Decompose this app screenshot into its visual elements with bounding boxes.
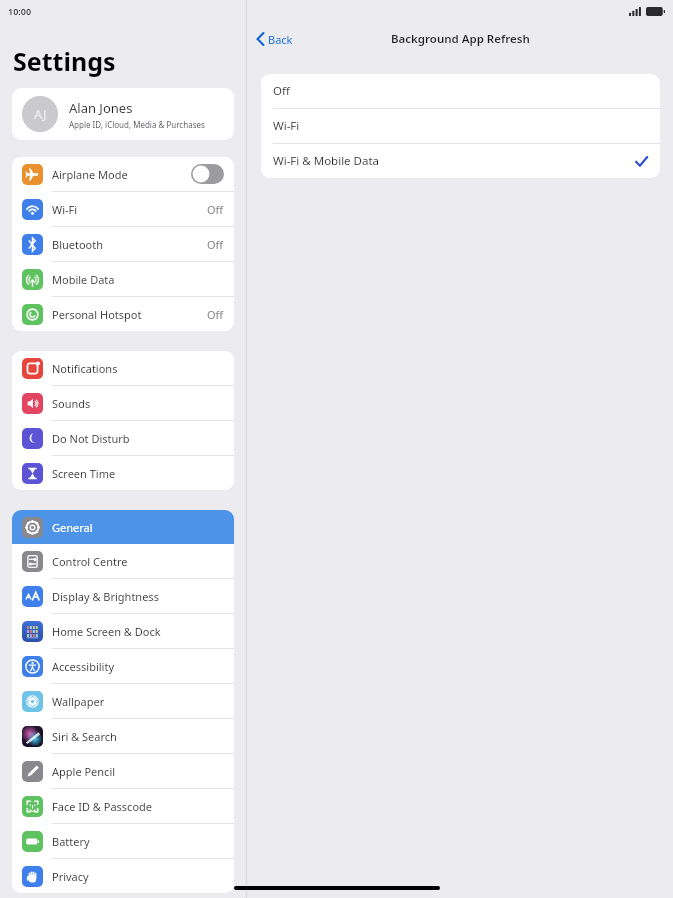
staticText: Control Centre [52,554,128,569]
button[interactable]: Wi-Fi & Mobile Data [261,144,660,178]
button[interactable]: Face ID & Passcode [12,789,234,823]
staticText: Background App Refresh [391,31,530,47]
staticText: 10:00 [8,5,32,17]
staticText: Apple ID, iCloud, Media & Purchases [69,119,205,130]
button[interactable]: Apple Pencil [12,754,234,788]
staticText: Airplane Mode [52,167,128,182]
staticText: Face ID & Passcode [52,799,153,814]
staticText: Off [207,307,224,322]
staticText: Alan Jones [69,99,133,117]
button[interactable]: Wi-Fi [12,192,234,226]
staticText: Off [207,202,224,217]
button[interactable]: Off [261,74,660,108]
button[interactable]: Display & Brightness [12,579,234,613]
staticText: Off [273,83,290,99]
staticText: Apple Pencil [52,764,116,779]
staticText: Off [207,237,224,252]
staticText: Personal Hotspot [52,307,142,322]
staticText: Sounds [52,396,91,411]
staticText: Mobile Data [52,272,115,287]
button[interactable]: Do Not Disturb [12,421,234,455]
staticText: Notifications [52,361,118,376]
button[interactable]: Back [247,25,301,53]
button[interactable]: Bluetooth [12,227,234,261]
staticText: Screen Time [52,466,116,481]
staticText: Settings [13,44,116,78]
button[interactable]: Siri & Search [12,719,234,753]
staticText: Accessibility [52,659,115,674]
staticText: Wi-Fi [52,202,78,217]
button[interactable]: Privacy [12,859,234,893]
staticText: Home Screen & Dock [52,624,161,639]
button[interactable]: AJ [12,88,234,140]
button[interactable]: Mobile Data [12,262,234,296]
staticText: Siri & Search [52,729,117,744]
staticText: Wallpaper [52,694,105,709]
button[interactable]: Sounds [12,386,234,420]
button[interactable]: Airplane Mode [12,157,234,191]
button[interactable]: General [12,510,234,544]
button[interactable]: Accessibility [12,649,234,683]
button[interactable]: Personal Hotspot [12,297,234,331]
staticText: Bluetooth [52,237,104,252]
staticText: Wi-Fi [273,118,300,134]
button[interactable]: Notifications [12,351,234,385]
button[interactable]: Battery [12,824,234,858]
staticText: Battery [52,834,90,849]
button[interactable]: Screen Time [12,456,234,490]
staticText: AJ [34,105,47,123]
staticText: Do Not Disturb [52,431,130,446]
button[interactable]: Control Centre [12,544,234,578]
staticText: Display & Brightness [52,589,159,604]
staticText: Privacy [52,869,89,884]
button[interactable]: Home Screen & Dock [12,614,234,648]
staticText: Back [268,32,293,47]
button[interactable]: Wallpaper [12,684,234,718]
staticText: Wi-Fi & Mobile Data [273,153,380,169]
button[interactable]: Wi-Fi [261,109,660,143]
staticText: General [52,520,93,535]
